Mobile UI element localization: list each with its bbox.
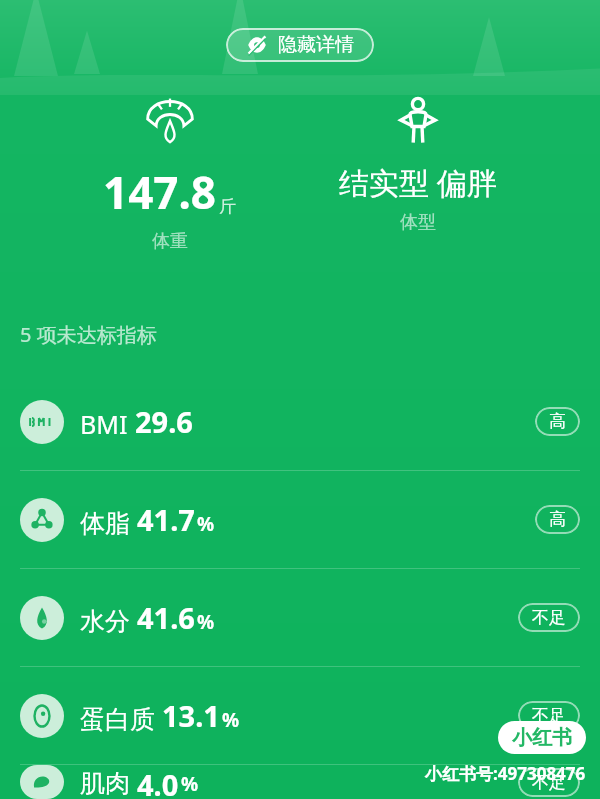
staticText: 不足 [532, 705, 566, 726]
staticText: 不足 [532, 607, 566, 628]
staticText: 斤 [219, 196, 236, 217]
staticText: 肌肉 [80, 768, 130, 799]
button[interactable]: 体脂 [0, 471, 600, 569]
button[interactable]: 肌肉 [0, 765, 600, 799]
staticText: 体重 [152, 230, 188, 253]
staticText: 结实型 偏胖 [339, 162, 497, 203]
other: 体脂 [20, 498, 64, 542]
staticText: % [181, 771, 199, 797]
other: 蛋白质 [20, 694, 64, 738]
other: 水分 [20, 596, 64, 640]
staticText: 小红书 [512, 725, 572, 750]
staticText: 水分 [80, 606, 130, 637]
staticText: 体脂 [80, 508, 130, 539]
button[interactable]: 水分 [0, 569, 600, 667]
staticText: 4.0 [137, 765, 179, 799]
staticText: % [222, 707, 240, 733]
other: BMI [20, 400, 64, 444]
other: 肌肉 [20, 765, 64, 799]
staticText: 高 [549, 411, 566, 432]
staticText: 小红书号:497308476 [425, 762, 586, 785]
staticText: 29.6 [135, 402, 193, 441]
button[interactable]: 蛋白质 [0, 667, 600, 765]
staticText: % [197, 609, 215, 635]
staticText: 147.8 [103, 162, 217, 222]
staticText: % [197, 511, 215, 537]
button[interactable]: 隐藏详情 [226, 28, 374, 62]
staticText: 13.1 [162, 696, 220, 735]
staticText: 不足 [532, 772, 566, 793]
staticText: 隐藏详情 [278, 33, 354, 57]
staticText: 41.6 [137, 598, 195, 637]
staticText: 高 [549, 509, 566, 530]
staticText: 5 项未达标指标 [20, 321, 157, 348]
button[interactable]: BMI [0, 373, 600, 471]
staticText: 蛋白质 [80, 704, 155, 735]
staticText: 41.7 [137, 500, 195, 539]
staticText: BMI [80, 407, 128, 441]
staticText: 体型 [400, 211, 436, 234]
